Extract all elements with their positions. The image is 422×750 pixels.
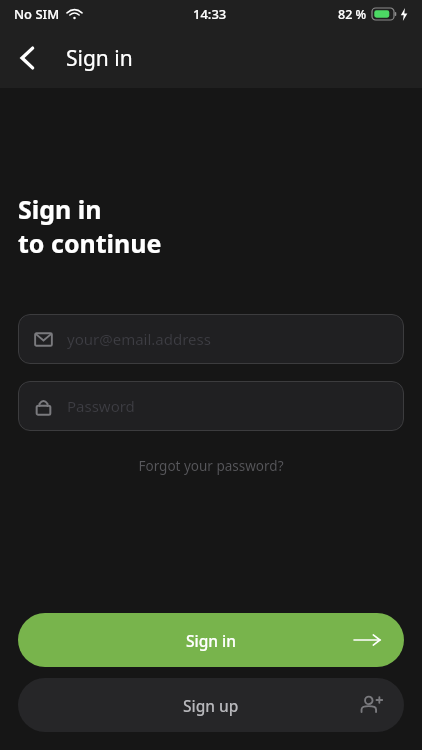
button[interactable]: Sign up: [18, 678, 404, 732]
button[interactable]: your@email.address: [18, 314, 404, 364]
button[interactable]: Back: [0, 31, 54, 85]
staticText: your@email.address: [67, 329, 211, 349]
staticText: to continue: [18, 226, 162, 260]
staticText: 14:33: [193, 5, 227, 23]
staticText: No SIM: [14, 5, 60, 23]
button[interactable]: Forgot your password?: [0, 451, 422, 481]
staticText: Forgot your password?: [138, 457, 284, 475]
staticText: Sign in: [18, 192, 102, 226]
button[interactable]: Password: [18, 381, 404, 431]
staticText: Password: [67, 396, 135, 416]
staticText: 82 %: [338, 6, 367, 23]
button[interactable]: Sign in: [18, 613, 404, 667]
staticText: Sign in: [186, 630, 236, 651]
staticText: Sign up: [183, 695, 239, 716]
staticText: Sign in: [66, 44, 133, 73]
